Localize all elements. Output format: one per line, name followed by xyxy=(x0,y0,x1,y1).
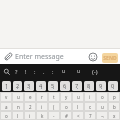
staticText: a xyxy=(5,104,8,110)
button[interactable]: # xyxy=(61,112,71,119)
staticText: ! xyxy=(25,68,27,75)
staticText: u xyxy=(62,68,66,75)
staticText: . xyxy=(43,68,45,75)
button[interactable]: e xyxy=(25,93,35,101)
button[interactable]: l xyxy=(73,103,83,110)
button[interactable]: ¬ xyxy=(97,112,107,119)
button[interactable]: 9 xyxy=(96,81,106,91)
staticText: u xyxy=(77,94,80,100)
button[interactable]: o xyxy=(1,112,11,119)
button[interactable]: ( xyxy=(49,103,59,110)
staticText: 6 xyxy=(63,82,67,89)
button[interactable]: o xyxy=(97,93,107,101)
staticText: 1 xyxy=(5,82,9,89)
staticText: p xyxy=(113,94,116,100)
button[interactable]: u xyxy=(73,93,83,101)
staticText: 8 xyxy=(87,82,91,89)
staticText: o xyxy=(101,94,104,100)
button[interactable]: k xyxy=(37,112,47,119)
staticText: SEND xyxy=(103,55,117,62)
staticText: 2 xyxy=(29,104,32,110)
staticText: k xyxy=(41,113,44,119)
staticText: n xyxy=(17,104,20,110)
button[interactable]: u xyxy=(97,103,107,110)
staticText: u xyxy=(17,94,20,100)
staticText: l xyxy=(17,113,19,119)
staticText: t xyxy=(53,94,55,100)
staticText: < xyxy=(77,113,80,119)
button[interactable]: i xyxy=(85,93,95,101)
button[interactable]: n xyxy=(13,103,23,110)
button[interactable]: : xyxy=(34,68,36,75)
staticText: i xyxy=(89,94,91,100)
button[interactable]: x xyxy=(109,112,119,119)
button[interactable]: i xyxy=(37,103,47,110)
button[interactable]: 2 xyxy=(13,81,22,91)
staticText: x xyxy=(113,113,116,119)
staticText: i xyxy=(41,104,43,110)
staticText: e xyxy=(29,94,32,100)
button[interactable]: p xyxy=(109,93,119,101)
button[interactable]: 3 xyxy=(24,81,34,91)
button[interactable]: - xyxy=(49,112,59,119)
button[interactable]: : xyxy=(52,68,54,75)
button[interactable]: o xyxy=(61,103,71,110)
staticText: # xyxy=(65,113,68,119)
button[interactable]: i xyxy=(25,112,35,119)
staticText: u xyxy=(101,104,104,110)
staticText: 2 xyxy=(16,82,20,89)
staticText: 5 xyxy=(51,82,55,89)
staticText: u xyxy=(77,68,81,75)
staticText: 7 xyxy=(89,113,92,119)
staticText: ¬ xyxy=(101,113,104,119)
staticText: ( xyxy=(53,104,55,110)
button[interactable]: < xyxy=(73,112,83,119)
button[interactable]: 6 xyxy=(60,81,70,91)
button[interactable]: ! xyxy=(25,68,27,75)
button[interactable]: 7 xyxy=(85,112,95,119)
staticText: o xyxy=(5,113,8,119)
staticText: c xyxy=(89,104,92,110)
staticText: 3 xyxy=(27,82,31,89)
staticText: Enter message xyxy=(15,52,64,62)
button[interactable]: 4 xyxy=(36,81,46,91)
staticText: : xyxy=(52,68,54,75)
button[interactable]: u xyxy=(62,68,66,75)
button[interactable]: 1 xyxy=(2,81,11,91)
button[interactable]: 7 xyxy=(72,81,82,91)
button[interactable]: r xyxy=(37,93,47,101)
button[interactable] xyxy=(3,68,11,76)
staticText: - xyxy=(53,113,55,119)
button[interactable] xyxy=(88,52,98,62)
button[interactable]: . xyxy=(43,68,45,75)
button[interactable]: v xyxy=(1,93,11,101)
button[interactable]: t xyxy=(49,93,59,101)
staticText: 4 xyxy=(39,82,43,89)
staticText: v xyxy=(5,94,8,100)
button[interactable]: u xyxy=(77,68,81,75)
staticText: ? xyxy=(15,68,18,75)
button[interactable]: u xyxy=(13,93,23,101)
staticText: 7 xyxy=(75,82,79,89)
staticText: o xyxy=(65,104,68,110)
button[interactable]: ? xyxy=(15,68,18,75)
button[interactable]: y xyxy=(61,93,71,101)
button[interactable] xyxy=(3,51,14,62)
button[interactable]: 0 xyxy=(108,81,118,91)
staticText: 9 xyxy=(99,82,103,89)
button[interactable]: 8 xyxy=(84,81,94,91)
button[interactable]: b xyxy=(109,103,119,110)
staticText: r xyxy=(41,94,43,100)
button[interactable]: c xyxy=(85,103,95,110)
staticText: (-) xyxy=(92,68,98,76)
button[interactable]: a xyxy=(1,103,11,110)
button[interactable]: (-) xyxy=(92,68,98,76)
staticText: : xyxy=(34,68,36,75)
staticText: 0 xyxy=(111,82,115,89)
staticText: l xyxy=(77,104,79,110)
button[interactable]: 2 xyxy=(25,103,35,110)
button[interactable]: 5 xyxy=(48,81,58,91)
button[interactable]: Enter message xyxy=(15,49,85,64)
button[interactable]: l xyxy=(13,112,23,119)
button[interactable]: SEND xyxy=(102,53,118,63)
